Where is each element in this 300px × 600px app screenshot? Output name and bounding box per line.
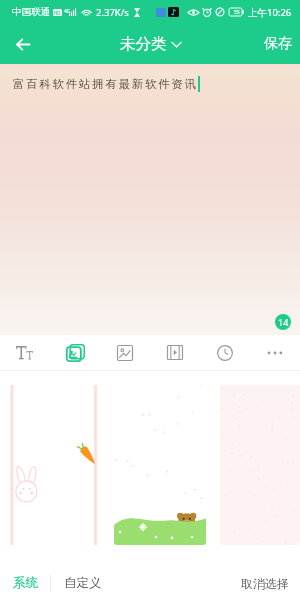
- button[interactable]: [114, 385, 206, 545]
- button[interactable]: [8, 385, 100, 545]
- staticText: 未分类: [120, 34, 167, 54]
- staticText: 富百科软件站拥有最新软件资讯: [13, 77, 198, 91]
- staticText: 55: [234, 9, 240, 16]
- staticText: 4G: [64, 8, 71, 15]
- button[interactable]: Insert image: [100, 335, 150, 370]
- staticText: ♪: [171, 8, 177, 17]
- button[interactable]: Back: [16, 33, 38, 55]
- staticText: 上午10:26: [248, 6, 292, 19]
- button[interactable]: 取消选择: [241, 576, 289, 591]
- staticText: HD: [54, 10, 61, 16]
- staticText: 保存: [264, 35, 292, 53]
- button[interactable]: Insert video: [150, 335, 200, 370]
- staticText: 取消选择: [241, 576, 289, 591]
- staticText: 中国联通: [12, 6, 50, 18]
- staticText: 14: [278, 316, 289, 328]
- staticText: 系统: [13, 575, 38, 591]
- button[interactable]: Background: [50, 335, 100, 370]
- button[interactable]: Reminder: [200, 335, 250, 370]
- button[interactable]: 未分类: [120, 34, 181, 54]
- button[interactable]: 14: [275, 314, 291, 330]
- staticText: 2.37K/s: [96, 6, 129, 19]
- button[interactable]: More: [250, 335, 300, 370]
- button[interactable]: 自定义: [64, 575, 102, 591]
- staticText: 自定义: [64, 575, 102, 591]
- button[interactable]: 系统: [13, 575, 38, 591]
- button[interactable]: 保存: [264, 35, 292, 53]
- button[interactable]: Text format: [0, 335, 50, 370]
